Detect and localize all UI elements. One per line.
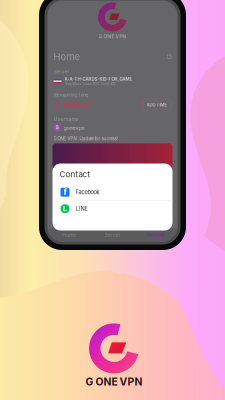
staticText: ⏻ xyxy=(166,54,171,60)
button[interactable]: Home xyxy=(47,228,91,241)
staticText: Home xyxy=(62,232,76,238)
staticText: Ping 62ms Load 40% Limit 100 xyxy=(64,82,115,86)
button[interactable]: ADD TIME xyxy=(142,100,171,110)
staticText: Facebook xyxy=(75,189,99,196)
staticText: Setting xyxy=(147,232,164,238)
staticText: Contact xyxy=(59,169,90,179)
staticText: Home xyxy=(53,51,79,63)
staticText: A-A-TH-CARDS-KID-FOR_GAME xyxy=(64,77,132,82)
staticText: Remaining time xyxy=(53,92,88,98)
staticText: Server xyxy=(53,69,69,75)
staticText: Server xyxy=(104,232,120,238)
staticText: G xyxy=(55,125,58,130)
staticText: LINE xyxy=(75,205,87,212)
staticText: G ONE VPN xyxy=(98,33,126,39)
staticText: f xyxy=(63,187,66,197)
staticText: ADD TIME xyxy=(146,102,167,108)
button[interactable]: Server xyxy=(91,228,134,241)
staticText: gonevpn xyxy=(63,124,84,131)
button[interactable]: L xyxy=(52,201,172,217)
button[interactable]: Setting xyxy=(134,228,177,241)
staticText: 00:08:27 xyxy=(63,101,91,109)
staticText: G ONE VPN : Update for success! xyxy=(53,136,117,141)
button[interactable]: f xyxy=(52,184,172,200)
staticText: Username xyxy=(53,116,78,122)
staticText: L xyxy=(63,205,67,213)
staticText: G ONE VPN xyxy=(85,375,142,388)
